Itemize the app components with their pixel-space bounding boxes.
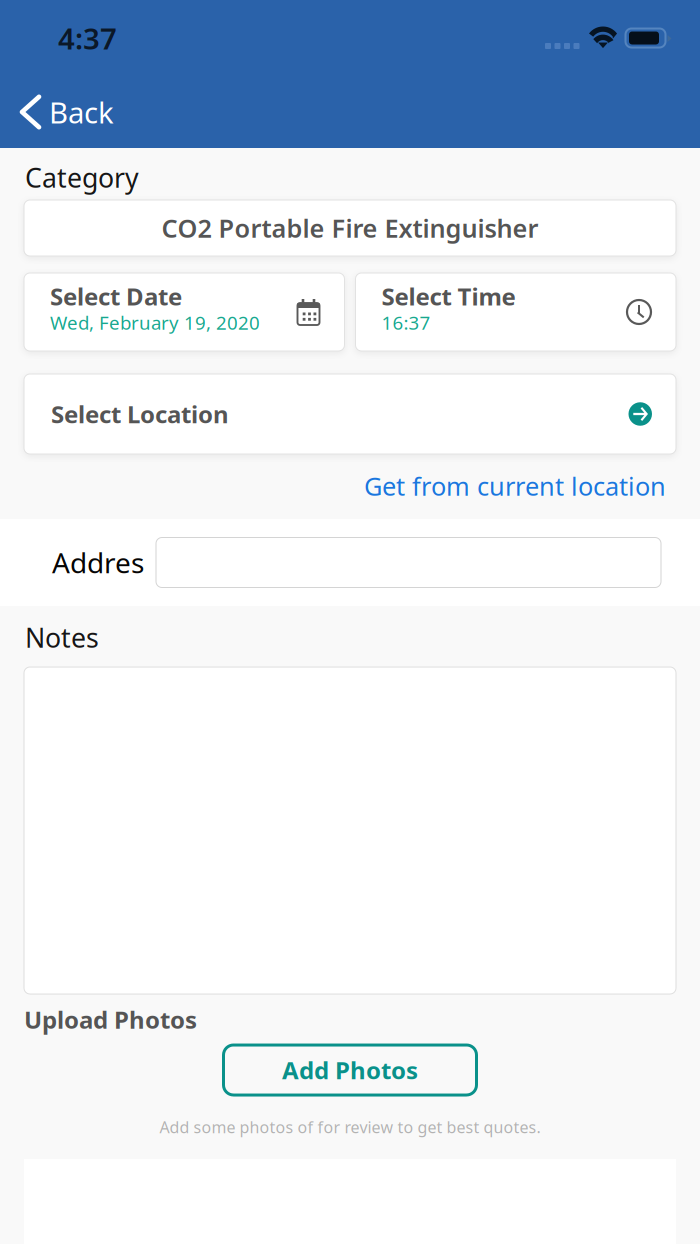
staticText: Wed, February 19, 2020 [50,310,260,335]
button[interactable]: CO2 Portable Fire Extinguisher [0,200,700,256]
staticText: 16:37 [381,310,430,335]
staticText: Back [49,92,114,131]
button[interactable]: Get from current location [0,454,700,518]
staticText: Select Time [381,280,515,312]
staticText: Addres [52,544,144,581]
staticText: Add Photos [282,1054,418,1086]
staticText: Category [25,160,139,195]
staticText: Upload Photos [24,1004,197,1035]
staticText: Select Location [51,398,229,430]
staticText: CO2 Portable Fire Extinguisher [161,211,538,245]
button[interactable]: Select Date [24,273,344,351]
staticText: Get from current location [364,469,666,503]
staticText: Notes [25,620,99,655]
staticText: Add some photos of for review to get bes… [159,1116,540,1138]
button[interactable]: Back [0,76,700,148]
staticText: Select Date [50,280,182,312]
button[interactable]: Select Location [0,351,700,454]
button[interactable]: Add Photos [223,1045,476,1095]
staticText: 4:37 [58,18,117,57]
button[interactable]: Select Time [355,273,676,351]
